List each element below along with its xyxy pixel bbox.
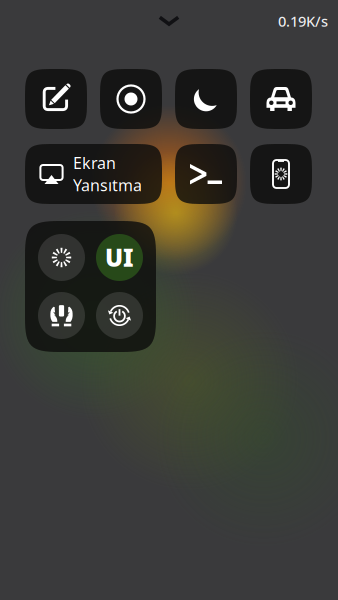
button[interactable]: Compose	[25, 69, 87, 129]
button[interactable]: Ekran	[25, 144, 162, 204]
button[interactable]: Terminal	[175, 144, 237, 204]
button[interactable]: Device	[250, 144, 312, 204]
button[interactable]: Activity	[38, 234, 85, 281]
button[interactable]: Gestures	[38, 292, 85, 339]
staticText: Ekran	[73, 152, 116, 173]
staticText: Yansıtma	[73, 174, 142, 196]
button[interactable]: UI	[96, 234, 143, 281]
staticText: UI	[105, 242, 134, 273]
staticText: 0.19K/s	[278, 11, 328, 31]
button[interactable]: Screen Recording	[100, 69, 162, 129]
button[interactable]: CarPlay	[250, 69, 312, 129]
button[interactable]: Focus	[175, 69, 237, 129]
button[interactable]: Restart	[96, 292, 143, 339]
